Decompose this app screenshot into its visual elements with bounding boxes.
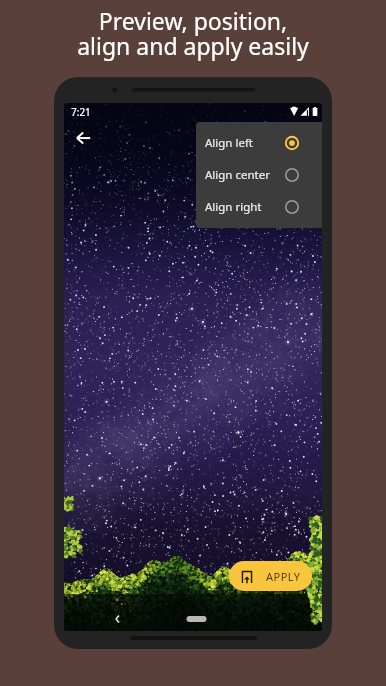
button[interactable]: Back	[107, 608, 131, 631]
staticText: Align center	[205, 167, 270, 183]
button[interactable]: Back	[66, 121, 100, 155]
button[interactable]: Align right	[196, 191, 322, 223]
staticText: APPLY	[266, 569, 301, 584]
button[interactable]: APPLY	[229, 561, 312, 591]
staticText: Preview, position, align and apply easil…	[0, 5, 386, 61]
button[interactable]: Align left	[196, 127, 322, 159]
staticText: Align right	[205, 199, 262, 215]
button[interactable]: Align center	[196, 159, 322, 191]
staticText: Align left	[205, 135, 254, 151]
staticText: 7:21	[71, 105, 91, 119]
